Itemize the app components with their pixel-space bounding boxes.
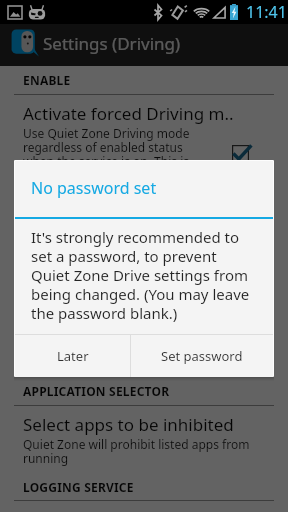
staticText: No password set xyxy=(31,177,157,199)
staticText: APPLICATION SELECTOR xyxy=(23,383,170,399)
staticText: ENABLE xyxy=(23,72,71,88)
staticText: Use Quiet Zone Driving mode regardless o… xyxy=(23,125,211,170)
other: Toggle activate forced driving mode xyxy=(227,140,253,166)
staticText: Later xyxy=(57,347,89,365)
button[interactable]: Set password xyxy=(131,335,273,377)
staticText: Activate forced Driving m.. xyxy=(23,102,234,125)
staticText: Quiet Zone will prohibit listed apps fro… xyxy=(23,436,258,467)
button[interactable]: Select apps to be inhibited xyxy=(0,406,288,467)
staticText: Settings (Driving) xyxy=(43,32,181,55)
staticText: LOGGING SERVICE xyxy=(23,479,134,495)
button[interactable]: Later xyxy=(15,335,130,377)
button[interactable]: Activate forced Driving m.. xyxy=(0,95,288,170)
staticText: 11:41 xyxy=(246,1,287,23)
staticText: Select apps to be inhibited xyxy=(23,413,234,436)
staticText: Set password xyxy=(161,347,243,365)
staticText: It's strongly recommended to set a passw… xyxy=(31,227,257,323)
